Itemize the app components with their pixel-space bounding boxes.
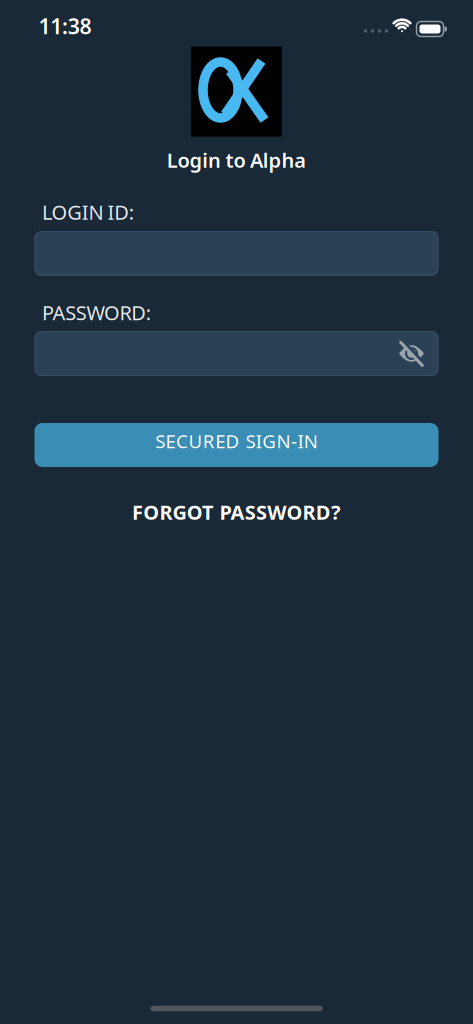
staticText: FORGOT PASSWORD?: [132, 499, 341, 525]
staticText: PASSWORD:: [42, 299, 151, 326]
staticText: SECURED SIGN-IN: [155, 429, 318, 453]
staticText: LOGIN ID:: [42, 199, 134, 225]
staticText: Login to Alpha: [167, 147, 306, 173]
staticText: 11:38: [39, 12, 91, 40]
